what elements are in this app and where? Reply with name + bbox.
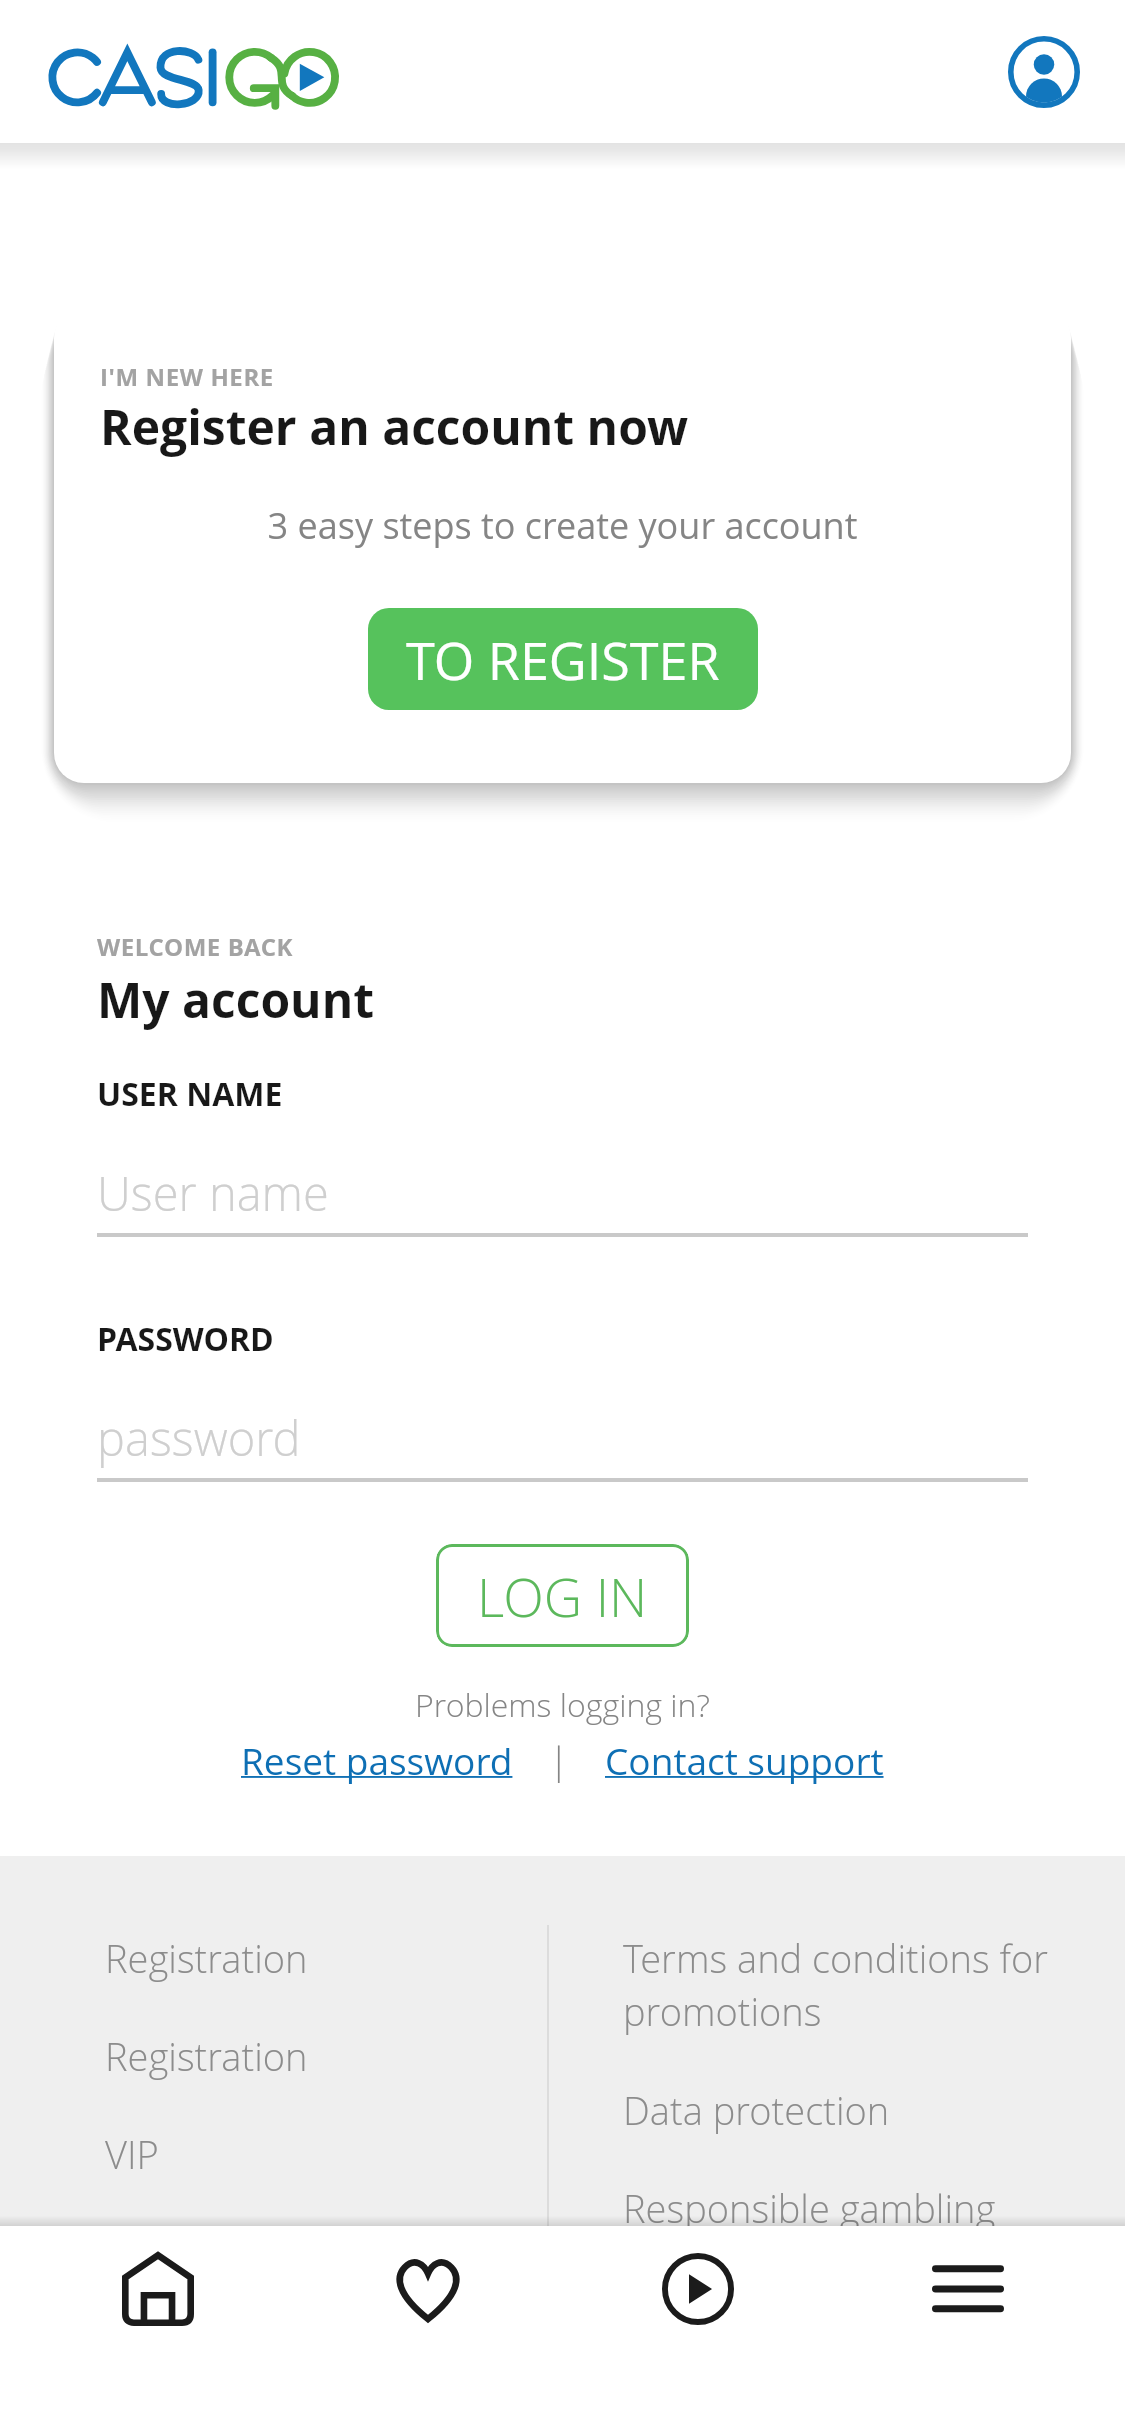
staticText: Problems logging in? bbox=[97, 1683, 1028, 1727]
button[interactable]: LOG IN bbox=[436, 1544, 689, 1647]
button[interactable]: Account bbox=[1008, 36, 1080, 108]
button[interactable]: Favourites bbox=[293, 2226, 563, 2352]
button[interactable]: I'M NEW HERE bbox=[54, 308, 1071, 783]
button[interactable]: Registration bbox=[105, 1932, 547, 2030]
staticText: | bbox=[549, 1736, 569, 1785]
staticText: PASSWORD bbox=[97, 1317, 274, 1361]
button[interactable]: VIP bbox=[105, 2128, 547, 2226]
button[interactable]: CasiGo home bbox=[46, 40, 340, 104]
staticText: TO REGISTER bbox=[406, 624, 720, 695]
button[interactable]: Play bbox=[563, 2226, 833, 2352]
staticText: Registration bbox=[105, 2030, 308, 2082]
button[interactable]: password bbox=[97, 1406, 1028, 1482]
staticText: Register an account now bbox=[100, 394, 688, 459]
staticText: I'M NEW HERE bbox=[100, 360, 274, 393]
button[interactable]: Terms and conditions for promotions bbox=[623, 1932, 1101, 2084]
button[interactable]: Menu bbox=[833, 2226, 1103, 2352]
staticText: Responsible gambling bbox=[623, 2182, 996, 2234]
staticText: USER NAME bbox=[97, 1072, 283, 1116]
staticText: User name bbox=[97, 1161, 329, 1225]
button[interactable]: TO REGISTER bbox=[368, 608, 758, 710]
staticText: Data protection bbox=[623, 2084, 890, 2136]
staticText: Terms and conditions for promotions bbox=[623, 1932, 1101, 2038]
staticText: WELCOME BACK bbox=[97, 930, 294, 963]
button[interactable]: User name bbox=[97, 1161, 1028, 1237]
staticText: VIP bbox=[105, 2128, 159, 2180]
staticText: My account bbox=[97, 967, 375, 1032]
staticText: Reset password bbox=[241, 1735, 513, 1785]
staticText: LOG IN bbox=[477, 1560, 648, 1632]
button[interactable]: Contact support bbox=[605, 1735, 884, 1785]
staticText: password bbox=[97, 1406, 301, 1470]
staticText: 3 easy steps to create your account bbox=[100, 501, 1025, 550]
button[interactable]: Reset password bbox=[241, 1735, 513, 1785]
button[interactable]: Home bbox=[22, 2226, 293, 2352]
button[interactable]: Registration bbox=[105, 2030, 547, 2128]
staticText: Contact support bbox=[605, 1735, 884, 1785]
button[interactable]: Data protection bbox=[623, 2084, 1101, 2182]
staticText: Registration bbox=[105, 1932, 308, 1984]
button[interactable]: Responsible gambling bbox=[623, 2182, 1101, 2234]
